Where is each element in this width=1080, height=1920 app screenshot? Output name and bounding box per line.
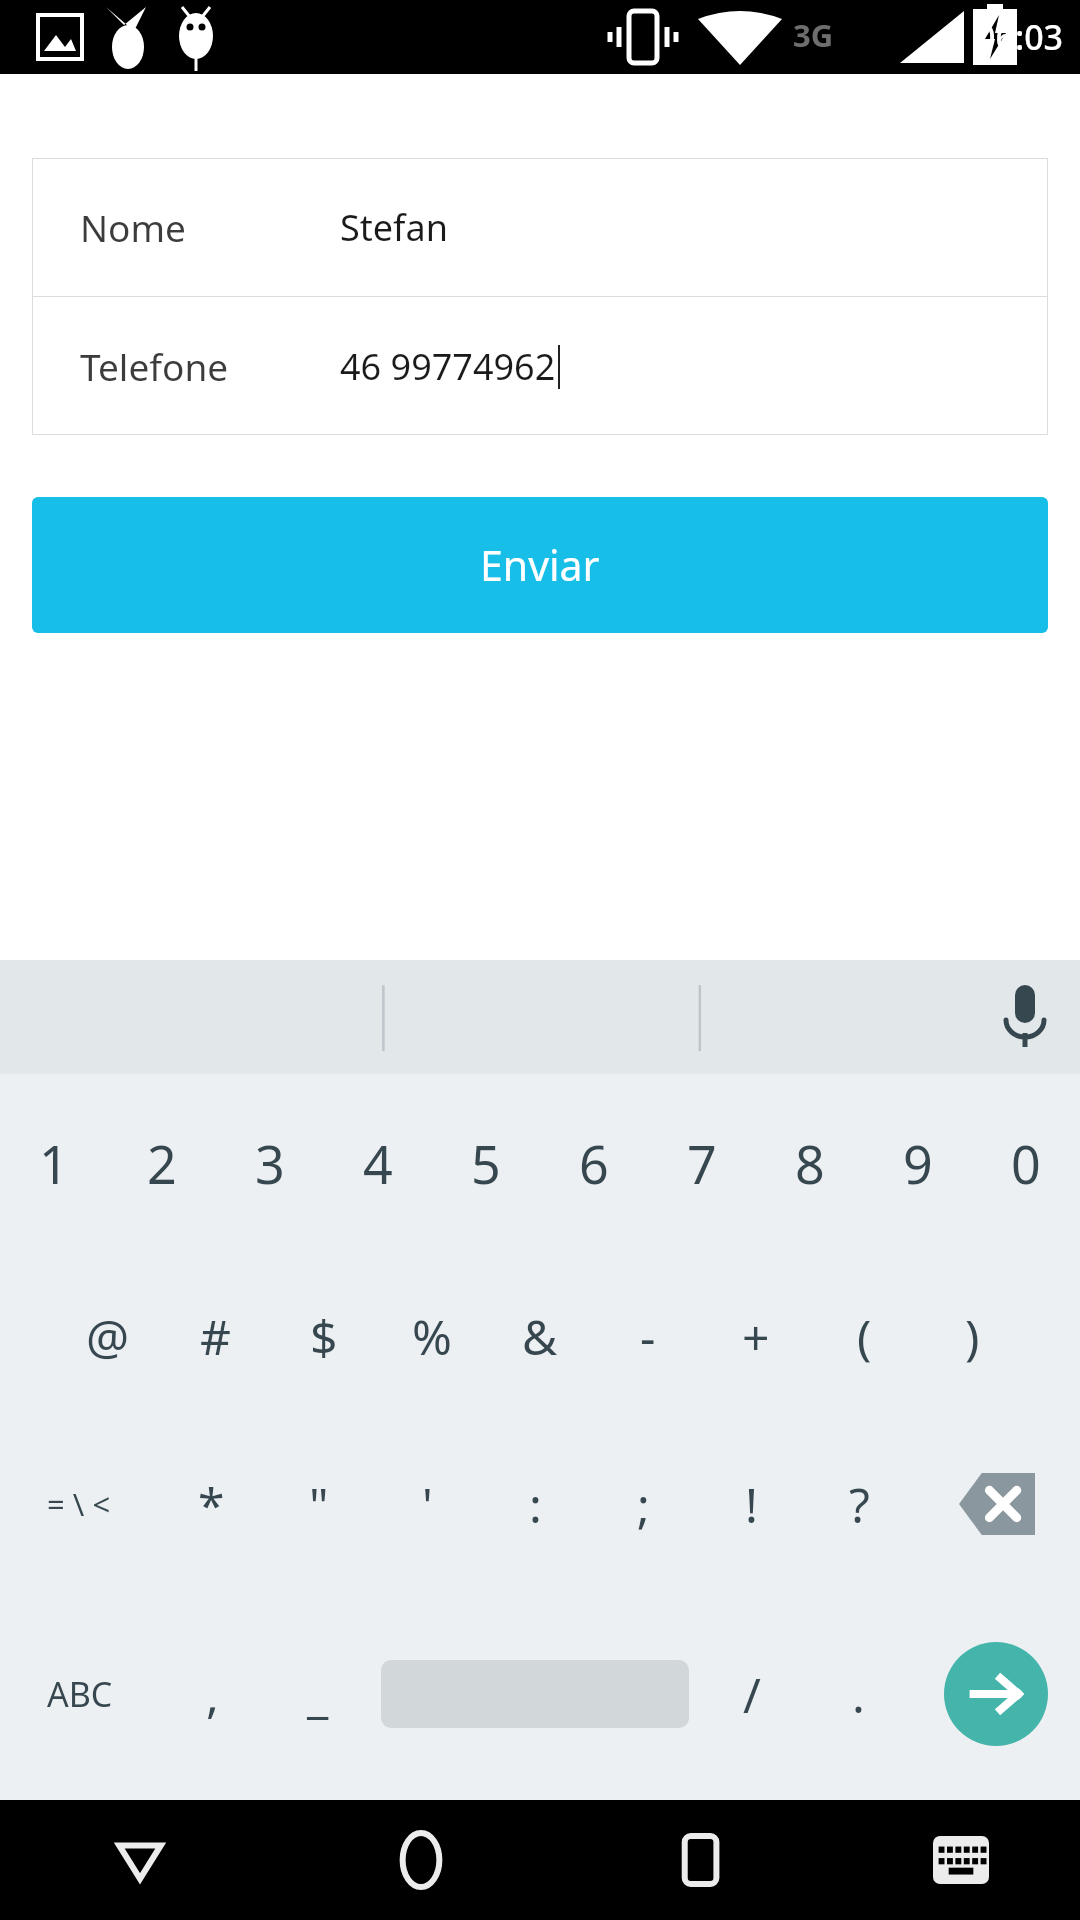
button[interactable]: " — [265, 1420, 373, 1588]
button[interactable]: ) — [918, 1252, 1026, 1420]
button[interactable]: & — [486, 1252, 594, 1420]
button[interactable]: # — [162, 1252, 270, 1420]
staticText: 5 — [471, 1128, 501, 1199]
staticText: * — [198, 1472, 225, 1537]
staticText: 7 — [687, 1128, 717, 1199]
staticText: ; — [637, 1472, 650, 1537]
button[interactable]: , — [159, 1588, 265, 1800]
staticText: ) — [965, 1304, 980, 1369]
staticText: , — [206, 1662, 219, 1727]
button[interactable]: : — [481, 1420, 589, 1588]
staticText: ABC — [47, 1671, 113, 1717]
button[interactable]: _ — [265, 1588, 371, 1800]
staticText: Nome — [80, 202, 340, 252]
button[interactable]: 6 — [540, 1074, 648, 1252]
button[interactable]: 2 — [108, 1074, 216, 1252]
button[interactable]: Nome — [32, 158, 1048, 296]
button[interactable]: Enter — [944, 1642, 1048, 1746]
staticText: : — [529, 1472, 542, 1537]
staticText: - — [640, 1304, 656, 1369]
button[interactable]: 8 — [756, 1074, 864, 1252]
staticText: % — [412, 1304, 452, 1369]
staticText: ( — [857, 1304, 872, 1369]
staticText: 8 — [795, 1128, 825, 1199]
staticText: 4 — [363, 1128, 393, 1199]
button[interactable]: 3 — [216, 1074, 324, 1252]
button[interactable]: $ — [270, 1252, 378, 1420]
staticText: " — [309, 1472, 329, 1537]
button[interactable]: Recents — [561, 1800, 842, 1920]
button[interactable]: ' — [373, 1420, 481, 1588]
staticText: 9 — [903, 1128, 933, 1199]
button[interactable]: Hide keyboard — [0, 1800, 280, 1920]
button[interactable]: Switch keyboard — [842, 1800, 1080, 1920]
staticText: 3 — [255, 1128, 285, 1199]
button[interactable]: ABC — [0, 1588, 159, 1800]
button[interactable]: ? — [805, 1420, 913, 1588]
staticText: ' — [422, 1472, 433, 1537]
staticText: 46 99774962 — [340, 342, 556, 391]
staticText: 6 — [579, 1128, 609, 1199]
staticText: # — [200, 1304, 232, 1369]
button[interactable]: ( — [810, 1252, 918, 1420]
staticText: 2 — [147, 1128, 177, 1199]
button[interactable]: ; — [589, 1420, 697, 1588]
button[interactable]: 7 — [648, 1074, 756, 1252]
button[interactable]: 5 — [432, 1074, 540, 1252]
staticText: = \ < — [47, 1483, 111, 1525]
staticText: 0 — [1011, 1128, 1041, 1199]
button[interactable]: + — [702, 1252, 810, 1420]
staticText: & — [522, 1304, 558, 1369]
staticText: . — [852, 1662, 865, 1727]
staticText: Enviar — [480, 537, 600, 593]
staticText: + — [742, 1304, 770, 1369]
staticText: / — [743, 1662, 761, 1727]
button[interactable]: 1 — [0, 1074, 108, 1252]
button[interactable]: Telefone — [32, 297, 1048, 435]
button[interactable]: Backspace — [913, 1420, 1080, 1588]
staticText: 1 — [39, 1128, 69, 1199]
button[interactable]: Home — [280, 1800, 561, 1920]
staticText: @ — [86, 1304, 130, 1369]
button[interactable]: - — [594, 1252, 702, 1420]
button[interactable]: 4 — [324, 1074, 432, 1252]
button[interactable]: * — [157, 1420, 265, 1588]
button[interactable]: ! — [697, 1420, 805, 1588]
staticText: 3G — [793, 14, 834, 56]
button[interactable]: Enviar — [32, 497, 1048, 633]
staticText: 06:03 — [976, 14, 1064, 60]
staticText: ! — [745, 1472, 758, 1537]
staticText: Telefone — [80, 341, 340, 391]
button[interactable]: 9 — [864, 1074, 972, 1252]
staticText: _ — [307, 1662, 329, 1727]
button[interactable]: = \ < — [0, 1420, 157, 1588]
staticText: $ — [310, 1304, 338, 1369]
button[interactable]: 0 — [972, 1074, 1080, 1252]
staticText: ? — [849, 1472, 870, 1537]
button[interactable]: @ — [54, 1252, 162, 1420]
button[interactable]: / — [699, 1588, 805, 1800]
button[interactable]: . — [805, 1588, 911, 1800]
staticText: Stefan — [340, 203, 448, 252]
button[interactable]: % — [378, 1252, 486, 1420]
